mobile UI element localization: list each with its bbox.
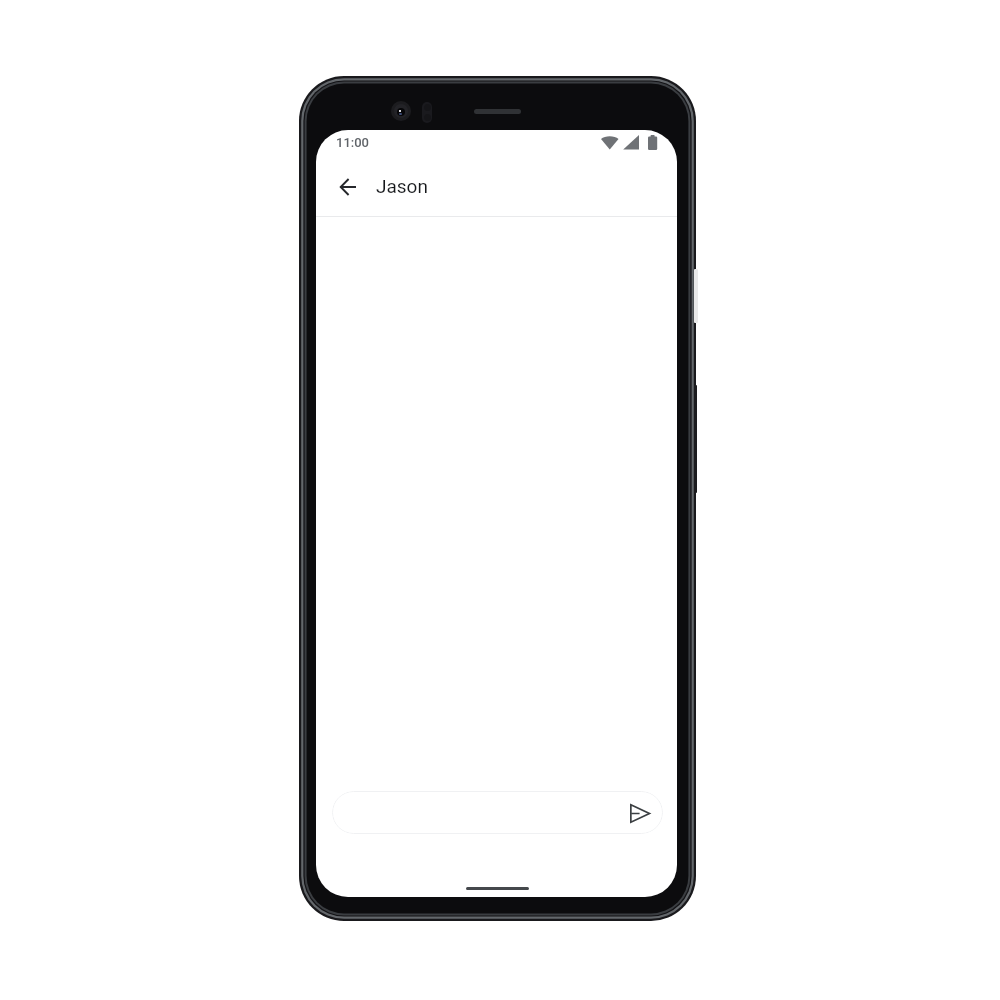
button[interactable]: Send message: [626, 799, 654, 827]
button[interactable]: Send message: [332, 791, 663, 834]
staticText: Jason: [376, 175, 428, 197]
button[interactable]: Navigate back: [324, 163, 372, 211]
staticText: 11:00: [336, 135, 370, 150]
